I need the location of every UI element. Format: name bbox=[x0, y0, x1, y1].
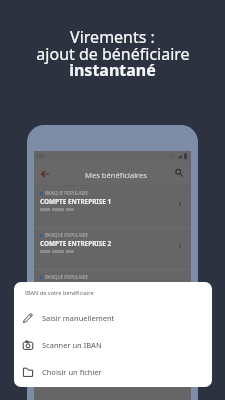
button[interactable]: BANQUE POPULAIRE bbox=[34, 186, 191, 228]
staticText: BANQUE POPULAIRE bbox=[45, 190, 88, 196]
button[interactable]: BANQUE POPULAIRE bbox=[34, 270, 191, 312]
staticText: COMPTE ENTREPRISE 1 bbox=[40, 197, 112, 206]
staticText: Choisir un fichier bbox=[42, 367, 102, 377]
staticText: Mes bénéficiaires bbox=[85, 170, 148, 180]
staticText: IBAN de votre bénéficiaire bbox=[25, 289, 94, 297]
staticText: 2:35 bbox=[36, 153, 45, 159]
staticText: LTE bbox=[168, 154, 175, 159]
button[interactable]: Retour bbox=[39, 168, 51, 180]
button[interactable]: Rechercher bbox=[173, 167, 185, 179]
staticText: instantané bbox=[69, 59, 156, 81]
staticText: COMPTE ENTREPRISE 2 bbox=[40, 239, 112, 248]
staticText: ajout de bénéficiaire bbox=[36, 43, 190, 65]
button[interactable]: Choisir un fichier bbox=[14, 361, 212, 383]
staticText: COMPTE ENTREPRISE 3 bbox=[40, 281, 112, 290]
staticText: BANQUE POPULAIRE bbox=[45, 274, 88, 280]
staticText: Virements : bbox=[70, 26, 155, 48]
button[interactable]: Scanner un IBAN bbox=[14, 334, 212, 356]
button[interactable]: Saisir manuellement bbox=[14, 307, 212, 329]
staticText: BANQUE POPULAIRE bbox=[45, 232, 88, 238]
button[interactable]: BANQUE POPULAIRE bbox=[34, 228, 191, 270]
staticText: Scanner un IBAN bbox=[42, 340, 102, 350]
staticText: Saisir manuellement bbox=[42, 313, 115, 323]
